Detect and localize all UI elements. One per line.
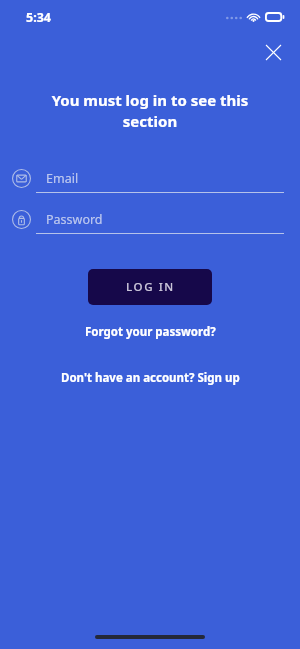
button[interactable]: Password [0, 205, 300, 234]
button[interactable]: Close [258, 37, 288, 67]
staticText: 5:34 [26, 9, 51, 26]
button[interactable]: Forgot your password? [77, 321, 224, 343]
staticText: Forgot your password? [85, 324, 216, 340]
button[interactable]: LOG IN [88, 269, 212, 305]
staticText: Password [46, 211, 103, 228]
staticText: Don't have an account? Sign up [61, 370, 240, 386]
staticText: You must log in to see this section [25, 90, 275, 132]
staticText: Email [46, 170, 79, 187]
button[interactable]: Don't have an account? Sign up [53, 367, 248, 389]
button[interactable]: Email [0, 164, 300, 193]
staticText: LOG IN [126, 279, 175, 295]
